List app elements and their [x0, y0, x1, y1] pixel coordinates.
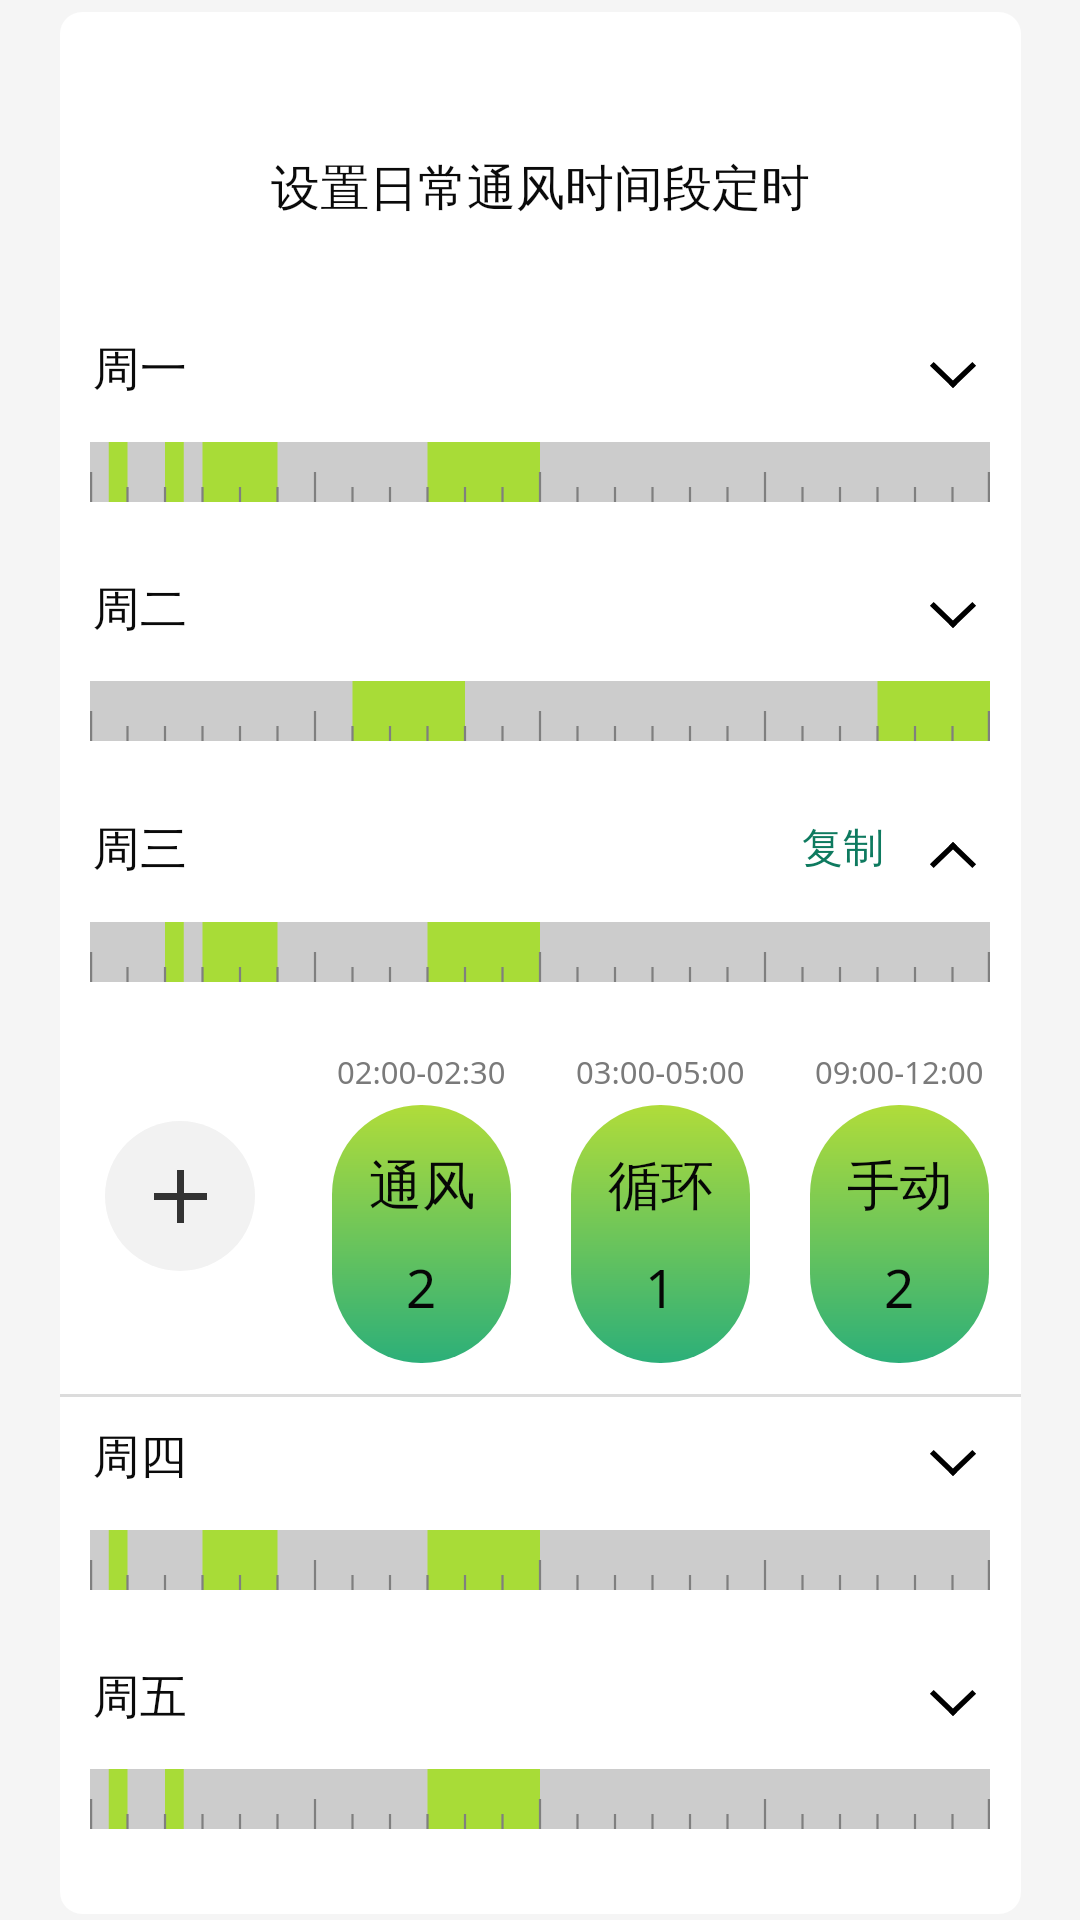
staticText: 09:00-12:00 — [815, 1051, 984, 1093]
staticText: 设置日常通风时间段定时 — [60, 158, 1021, 220]
button[interactable]: Expand — [913, 1663, 993, 1743]
staticText: 周三 — [93, 820, 187, 879]
button[interactable]: 周四 — [60, 1415, 1021, 1499]
staticText: 周四 — [93, 1428, 187, 1487]
button[interactable]: Expand — [913, 335, 993, 415]
button[interactable]: 通风 — [332, 1105, 511, 1363]
staticText: 周五 — [93, 1668, 187, 1727]
staticText: 循环 — [608, 1153, 714, 1220]
button[interactable]: 周一 — [60, 327, 1021, 411]
button[interactable]: 手动 — [810, 1105, 989, 1363]
staticText: 03:00-05:00 — [576, 1051, 745, 1093]
button[interactable]: 复制 — [802, 823, 884, 875]
staticText: 02:00-02:30 — [337, 1051, 506, 1093]
button[interactable]: Expand — [913, 1423, 993, 1503]
button[interactable]: Collapse — [913, 815, 993, 895]
button[interactable]: 周二 — [60, 567, 1021, 651]
staticText: 2 — [406, 1251, 437, 1323]
staticText: 通风 — [369, 1153, 475, 1220]
button[interactable]: 循环 — [571, 1105, 750, 1363]
staticText: 周一 — [93, 340, 187, 399]
staticText: 2 — [884, 1251, 915, 1323]
button[interactable]: Expand — [913, 575, 993, 655]
staticText: 手动 — [847, 1153, 953, 1220]
staticText: 1 — [645, 1251, 676, 1323]
staticText: 周二 — [93, 580, 187, 639]
button[interactable]: 周三 — [60, 807, 1021, 891]
button[interactable]: 周五 — [60, 1655, 1021, 1739]
button[interactable]: Add time period — [105, 1121, 255, 1271]
